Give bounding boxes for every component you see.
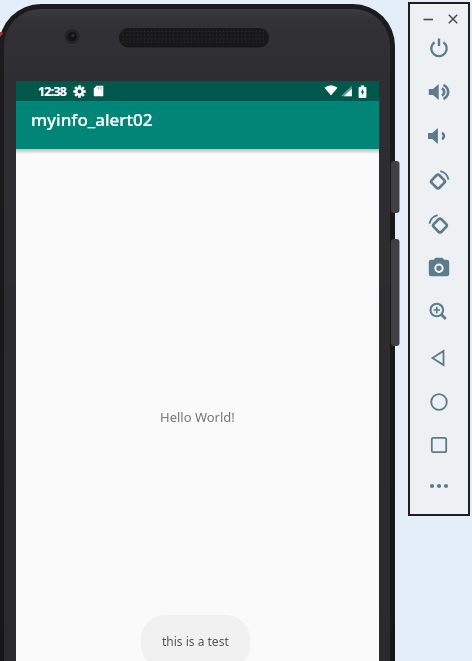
staticText: 12:38 (38, 83, 67, 100)
staticText: this is a test (162, 633, 229, 649)
button[interactable]: this is a test (141, 615, 250, 661)
button[interactable] (419, 292, 459, 332)
button[interactable] (419, 116, 459, 156)
button[interactable] (419, 338, 459, 378)
button[interactable] (419, 160, 459, 200)
staticText: myinfo_alert02 (31, 108, 153, 131)
button[interactable] (419, 204, 459, 244)
button[interactable] (419, 28, 459, 68)
button[interactable] (419, 425, 459, 465)
button[interactable] (419, 382, 459, 422)
button[interactable] (419, 466, 459, 506)
button[interactable] (419, 4, 437, 34)
button[interactable]: myinfo_alert02 (16, 101, 379, 149)
staticText: Hello World! (160, 408, 235, 426)
button[interactable] (419, 72, 459, 112)
button[interactable] (419, 248, 459, 288)
button[interactable] (444, 4, 462, 34)
